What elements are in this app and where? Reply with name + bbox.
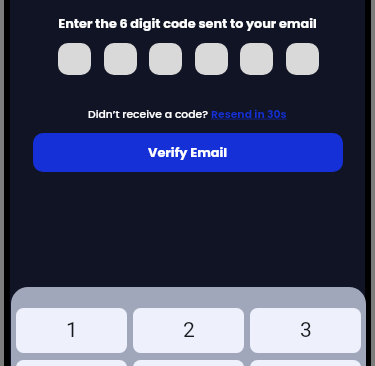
- button[interactable]: Code digit 6: [286, 43, 319, 75]
- staticText: Verify Email: [148, 143, 228, 161]
- staticText: Resend in 30s: [211, 107, 287, 122]
- button[interactable]: Code digit 2: [104, 43, 137, 75]
- staticText: Enter the 6 digit code sent to your emai…: [10, 15, 365, 33]
- button[interactable]: Code digit 5: [240, 43, 273, 75]
- staticText: 2: [183, 318, 195, 343]
- button[interactable]: 1: [16, 308, 127, 353]
- button[interactable]: 2: [133, 308, 244, 353]
- button[interactable]: Code digit 4: [195, 43, 228, 75]
- staticText: 1: [66, 318, 78, 343]
- button[interactable]: Code digit 1: [58, 43, 91, 75]
- button[interactable]: 4: [16, 360, 127, 366]
- button[interactable]: 3: [250, 308, 361, 353]
- button[interactable]: Code digit 3: [149, 43, 182, 75]
- button[interactable]: 6: [250, 360, 361, 366]
- staticText: 3: [300, 318, 312, 343]
- button[interactable]: Resend in 30s: [211, 107, 287, 122]
- button[interactable]: Verify Email: [33, 133, 343, 172]
- button[interactable]: 5: [133, 360, 244, 366]
- staticText: Didn’t receive a code?: [88, 107, 211, 122]
